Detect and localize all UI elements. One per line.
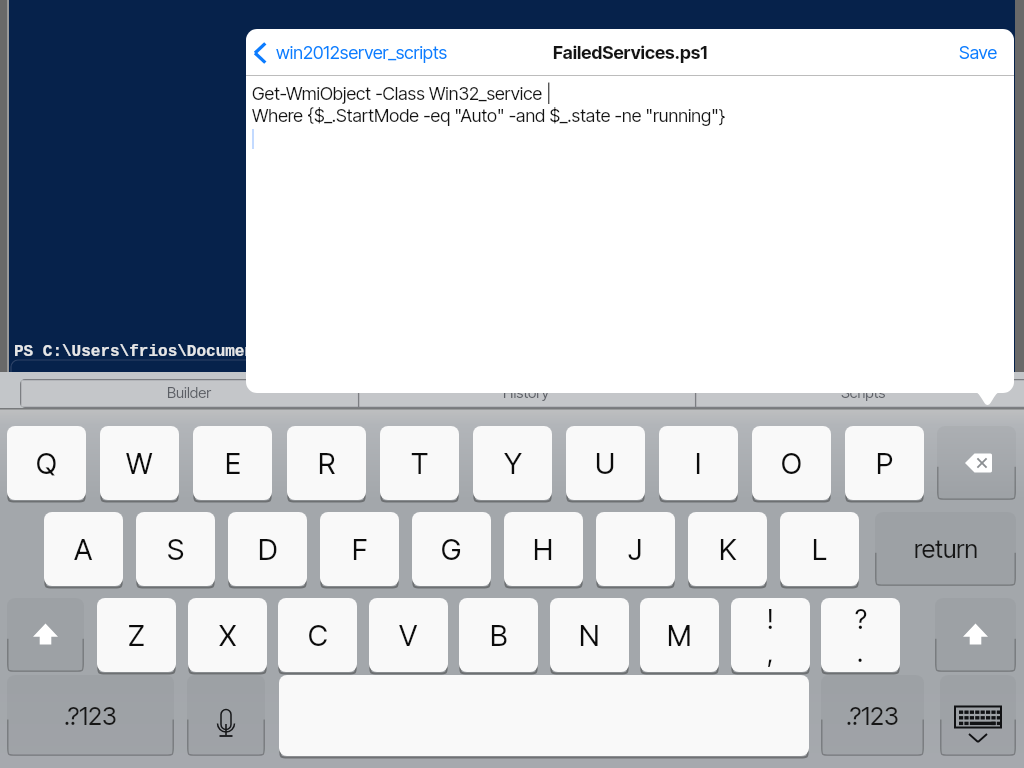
button[interactable]: P bbox=[845, 426, 924, 500]
button[interactable]: Dictation bbox=[187, 675, 265, 756]
staticText: A bbox=[74, 532, 93, 567]
button[interactable]: V bbox=[369, 598, 448, 672]
staticText: Builder bbox=[167, 383, 212, 401]
staticText: Get-WmiObject -Class Win32_service | bbox=[252, 83, 552, 105]
button[interactable]: J bbox=[596, 512, 675, 586]
staticText: H bbox=[533, 532, 554, 567]
button[interactable]: Save bbox=[943, 29, 1014, 76]
staticText: Z bbox=[128, 618, 145, 653]
staticText: Where {$_.StartMode -eq "Auto" -and $_.s… bbox=[252, 105, 726, 127]
button[interactable]: L bbox=[780, 512, 859, 586]
staticText: C bbox=[308, 618, 328, 653]
button[interactable]: Shift bbox=[935, 598, 1016, 672]
button[interactable]: S bbox=[136, 512, 215, 586]
button[interactable]: U bbox=[566, 426, 645, 500]
staticText: S bbox=[167, 532, 185, 567]
button[interactable]: E bbox=[193, 426, 272, 500]
button[interactable]: W bbox=[100, 426, 179, 500]
button[interactable]: I bbox=[659, 426, 738, 500]
button[interactable]: .?123 bbox=[821, 675, 924, 756]
staticText: P bbox=[876, 446, 894, 481]
staticText: , bbox=[767, 637, 774, 668]
staticText: Save bbox=[959, 42, 998, 64]
button[interactable]: Backspace bbox=[937, 426, 1016, 500]
button[interactable]: Hide keyboard bbox=[940, 675, 1016, 756]
staticText: B bbox=[490, 618, 508, 653]
button[interactable]: ! bbox=[731, 598, 810, 672]
staticText: D bbox=[258, 532, 278, 567]
staticText: F bbox=[352, 532, 368, 567]
staticText: T bbox=[411, 446, 429, 481]
staticText: U bbox=[595, 446, 616, 481]
button[interactable]: M bbox=[640, 598, 719, 672]
button[interactable]: O bbox=[752, 426, 831, 500]
staticText: M bbox=[667, 618, 692, 653]
staticText: . bbox=[857, 637, 864, 668]
button[interactable]: Scripts bbox=[695, 379, 1024, 408]
staticText: L bbox=[812, 532, 827, 567]
staticText: E bbox=[225, 446, 241, 481]
button[interactable]: Shift bbox=[7, 598, 84, 672]
button[interactable]: Builder bbox=[20, 379, 358, 408]
button[interactable]: R bbox=[287, 426, 366, 500]
button[interactable]: Q bbox=[7, 426, 86, 500]
staticText: J bbox=[628, 532, 643, 567]
button[interactable]: X bbox=[188, 598, 267, 672]
button[interactable]: D bbox=[228, 512, 307, 586]
button[interactable]: K bbox=[688, 512, 767, 586]
button[interactable]: A bbox=[44, 512, 123, 586]
staticText: win2012server_scripts bbox=[276, 42, 447, 64]
staticText: W bbox=[126, 446, 153, 481]
button[interactable]: F bbox=[320, 512, 399, 586]
staticText: return bbox=[914, 534, 978, 564]
staticText: I bbox=[695, 446, 702, 481]
button[interactable]: return bbox=[875, 512, 1016, 586]
staticText: Scripts bbox=[841, 383, 886, 401]
button[interactable]: G bbox=[412, 512, 491, 586]
button[interactable]: Y bbox=[473, 426, 552, 500]
button[interactable]: ? bbox=[821, 598, 900, 672]
staticText: G bbox=[441, 532, 462, 567]
staticText: PS C:\Users\frios\Documents> bbox=[14, 343, 283, 361]
staticText: O bbox=[781, 446, 802, 481]
button[interactable]: History bbox=[358, 379, 695, 408]
button[interactable]: T bbox=[380, 426, 459, 500]
staticText: FailedServices.ps1 bbox=[553, 42, 708, 64]
button[interactable]: B bbox=[459, 598, 538, 672]
staticText: ! bbox=[767, 604, 774, 635]
staticText: Y bbox=[504, 446, 522, 481]
button[interactable]: N bbox=[550, 598, 629, 672]
button[interactable] bbox=[279, 675, 809, 756]
staticText: X bbox=[219, 618, 237, 653]
button[interactable]: C bbox=[278, 598, 357, 672]
staticText: .?123 bbox=[64, 701, 117, 731]
staticText: N bbox=[579, 618, 600, 653]
button[interactable]: win2012server_scripts bbox=[250, 29, 447, 76]
button[interactable]: H bbox=[504, 512, 583, 586]
staticText: Q bbox=[36, 446, 57, 481]
staticText: R bbox=[318, 446, 336, 481]
button[interactable]: .?123 bbox=[7, 675, 174, 756]
staticText: V bbox=[399, 618, 418, 653]
staticText: .?123 bbox=[846, 701, 899, 731]
staticText: K bbox=[719, 532, 737, 567]
staticText: History bbox=[503, 383, 550, 401]
staticText: ? bbox=[855, 604, 867, 635]
button[interactable]: Z bbox=[97, 598, 176, 672]
